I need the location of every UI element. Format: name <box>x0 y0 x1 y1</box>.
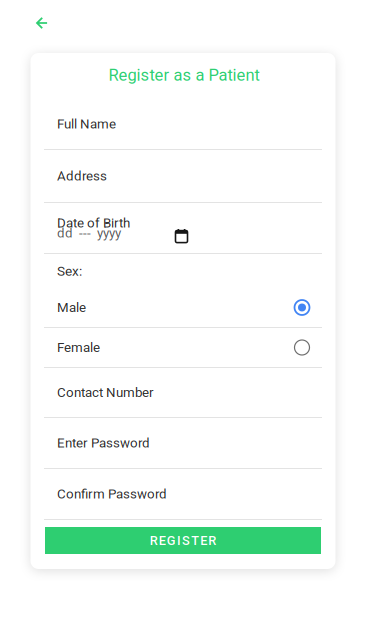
staticText: Contact Number <box>57 385 154 400</box>
staticText: Male <box>57 300 86 315</box>
staticText: dd --- yyyy <box>57 225 121 241</box>
staticText: Address <box>57 168 107 184</box>
button[interactable]: Female <box>44 328 322 368</box>
button[interactable]: Enter Password <box>44 418 322 469</box>
button[interactable]: Confirm Password <box>44 469 322 520</box>
staticText: Sex: <box>57 263 82 279</box>
button[interactable]: Address <box>44 150 322 203</box>
staticText: REGISTER <box>150 533 216 548</box>
staticText: Enter Password <box>57 435 150 451</box>
button[interactable]: REGISTER <box>45 527 321 554</box>
staticText: Register as a Patient <box>108 65 259 85</box>
button[interactable]: Contact Number <box>44 368 322 418</box>
staticText: Female <box>57 340 100 355</box>
button[interactable]: Full Name <box>44 99 322 150</box>
button[interactable]: Male <box>44 288 322 328</box>
button[interactable]: Date of Birth <box>44 203 322 254</box>
staticText: Full Name <box>57 116 116 132</box>
staticText: Date of Birth <box>57 215 130 231</box>
staticText: Confirm Password <box>57 486 167 502</box>
button[interactable]: Back <box>30 12 54 34</box>
